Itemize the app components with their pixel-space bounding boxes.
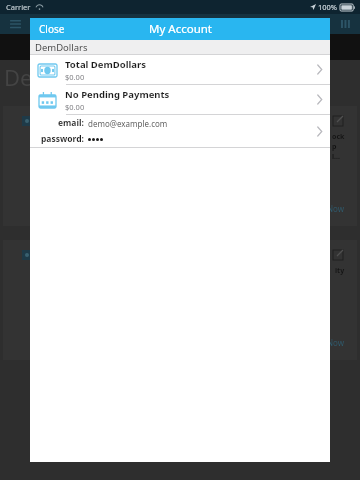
staticText: Now — [327, 203, 345, 214]
staticText: ock p l... — [332, 132, 345, 162]
staticText: $0.00 — [65, 72, 85, 82]
other: Open — [317, 95, 322, 104]
other: Open — [317, 127, 322, 136]
button[interactable]: Grid — [338, 17, 352, 31]
staticText: My Account — [149, 21, 212, 37]
staticText: demo@example.com — [88, 118, 168, 129]
other: Open — [317, 65, 322, 74]
staticText: Total DemDollars — [65, 58, 147, 71]
button[interactable]: No Pending Payments — [30, 85, 330, 114]
staticText: ity — [335, 266, 345, 276]
button[interactable]: Total DemDollars — [30, 55, 330, 84]
staticText: No Pending Payments — [65, 88, 170, 101]
button[interactable]: Close — [30, 19, 74, 39]
staticText: $0.00 — [65, 102, 85, 112]
button[interactable]: email: — [30, 115, 330, 147]
staticText: Now — [327, 337, 345, 348]
staticText: 100% — [318, 2, 338, 12]
staticText: DemDollars — [35, 41, 88, 54]
staticText: Close — [39, 22, 65, 36]
staticText: password: — [41, 133, 84, 145]
button[interactable]: Menu — [8, 17, 22, 31]
staticText: Carrier — [6, 2, 31, 12]
staticText: email: — [58, 117, 84, 129]
staticText: De — [4, 62, 33, 92]
